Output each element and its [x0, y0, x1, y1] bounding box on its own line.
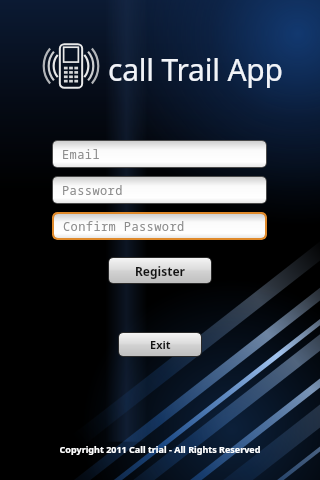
button[interactable]: Confirm Password: [54, 214, 265, 238]
button[interactable]: Exit: [119, 333, 201, 356]
other: Call Trail App logo: [40, 40, 102, 92]
staticText: Email: [62, 146, 101, 162]
staticText: Password: [62, 182, 123, 198]
staticText: Register: [135, 263, 185, 279]
staticText: Copyright 2011 Call trial - All Rights R…: [20, 443, 300, 455]
button[interactable]: Email: [53, 141, 266, 167]
button[interactable]: Register: [109, 258, 211, 283]
staticText: call Trail App: [108, 49, 283, 90]
staticText: Confirm Password: [63, 218, 185, 234]
staticText: Exit: [150, 337, 171, 352]
button[interactable]: Password: [53, 177, 266, 203]
